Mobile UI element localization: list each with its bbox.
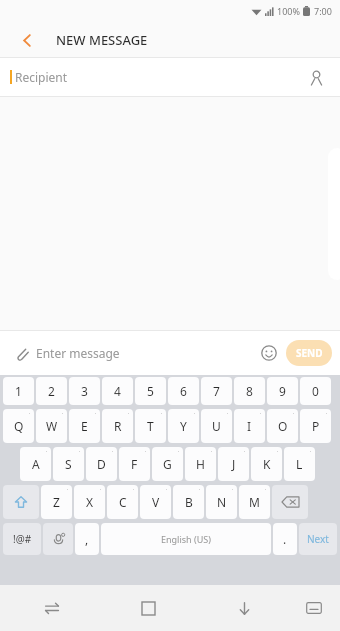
- button[interactable]: Next: [299, 523, 337, 555]
- staticText: H: [196, 456, 205, 472]
- button[interactable]: Switch keyboard: [292, 585, 336, 631]
- button[interactable]: N: [206, 485, 237, 519]
- staticText: Q: [14, 418, 24, 434]
- staticText: 2: [48, 383, 55, 399]
- staticText: ·: [79, 448, 81, 455]
- staticText: O: [278, 418, 288, 434]
- staticText: 6: [180, 383, 187, 399]
- staticText: L: [296, 456, 303, 472]
- button[interactable]: D: [86, 447, 117, 481]
- staticText: ·: [46, 448, 48, 455]
- button[interactable]: H: [185, 447, 216, 481]
- staticText: ·: [277, 448, 279, 455]
- staticText: 7:00: [314, 5, 332, 17]
- button[interactable]: P: [300, 409, 331, 443]
- button[interactable]: 8: [234, 377, 265, 405]
- staticText: 7: [213, 383, 220, 399]
- button[interactable]: ,: [75, 523, 99, 555]
- button[interactable]: Shift: [3, 485, 39, 519]
- staticText: .: [283, 531, 287, 547]
- button[interactable]: Y: [168, 409, 199, 443]
- button[interactable]: K: [251, 447, 282, 481]
- button[interactable]: M: [239, 485, 270, 519]
- button[interactable]: 3: [69, 377, 100, 405]
- button[interactable]: T: [135, 409, 166, 443]
- button[interactable]: Attach: [8, 340, 34, 366]
- button[interactable]: Recents: [4, 585, 100, 631]
- button[interactable]: F: [119, 447, 150, 481]
- staticText: ·: [260, 410, 262, 417]
- button[interactable]: 1: [3, 377, 34, 405]
- button[interactable]: 4: [102, 377, 133, 405]
- staticText: ·: [232, 486, 234, 493]
- staticText: ·: [211, 448, 213, 455]
- staticText: D: [97, 456, 106, 472]
- button[interactable]: G: [152, 447, 183, 481]
- button[interactable]: Recipient: [0, 58, 340, 96]
- staticText: T: [147, 418, 154, 434]
- button[interactable]: I: [234, 409, 265, 443]
- staticText: Enter message: [36, 345, 120, 361]
- button[interactable]: Emoji: [256, 340, 282, 366]
- staticText: ·: [62, 410, 64, 417]
- button[interactable]: U: [201, 409, 232, 443]
- staticText: ·: [326, 410, 328, 417]
- button[interactable]: Z: [41, 485, 72, 519]
- button[interactable]: SEND: [286, 340, 332, 366]
- staticText: !@#: [13, 532, 32, 546]
- button[interactable]: Hide keyboard: [196, 585, 292, 631]
- staticText: ·: [265, 486, 267, 493]
- button[interactable]: Q: [3, 409, 34, 443]
- button[interactable]: R: [102, 409, 133, 443]
- button[interactable]: B: [173, 485, 204, 519]
- button[interactable]: .: [273, 523, 297, 555]
- staticText: 5: [147, 383, 154, 399]
- button[interactable]: X: [74, 485, 105, 519]
- button[interactable]: Backspace: [272, 485, 308, 519]
- staticText: ·: [133, 486, 135, 493]
- staticText: Next: [307, 532, 329, 546]
- button[interactable]: C: [107, 485, 138, 519]
- button[interactable]: E: [69, 409, 100, 443]
- button[interactable]: 5: [135, 377, 166, 405]
- staticText: A: [32, 456, 40, 472]
- button[interactable]: English (US): [101, 523, 271, 555]
- staticText: C: [119, 494, 127, 510]
- button[interactable]: Contacts: [302, 63, 330, 91]
- staticText: M: [249, 494, 260, 510]
- staticText: J: [232, 456, 236, 472]
- button[interactable]: 0: [300, 377, 331, 405]
- button[interactable]: S: [53, 447, 84, 481]
- button[interactable]: Home: [100, 585, 196, 631]
- staticText: English (US): [161, 533, 211, 545]
- staticText: NEW MESSAGE: [56, 31, 148, 49]
- staticText: 100%: [277, 5, 300, 17]
- button[interactable]: 9: [267, 377, 298, 405]
- button[interactable]: L: [284, 447, 315, 481]
- staticText: 9: [279, 383, 286, 399]
- staticText: ·: [244, 448, 246, 455]
- staticText: X: [86, 494, 94, 510]
- staticText: W: [46, 418, 58, 434]
- staticText: ·: [67, 486, 69, 493]
- staticText: Y: [180, 418, 187, 434]
- staticText: ·: [310, 448, 312, 455]
- button[interactable]: A: [20, 447, 51, 481]
- button[interactable]: V: [140, 485, 171, 519]
- staticText: ·: [100, 486, 102, 493]
- button[interactable]: J: [218, 447, 249, 481]
- button[interactable]: W: [36, 409, 67, 443]
- button[interactable]: 7: [201, 377, 232, 405]
- button[interactable]: O: [267, 409, 298, 443]
- button[interactable]: !@#: [3, 523, 41, 555]
- staticText: ·: [145, 448, 147, 455]
- staticText: ,: [85, 531, 89, 547]
- button[interactable]: 6: [168, 377, 199, 405]
- staticText: ·: [161, 410, 163, 417]
- staticText: ·: [293, 410, 295, 417]
- staticText: 4: [114, 383, 121, 399]
- button[interactable]: Voice input: [43, 523, 73, 555]
- staticText: ·: [227, 410, 229, 417]
- button[interactable]: Back: [10, 23, 44, 57]
- button[interactable]: 2: [36, 377, 67, 405]
